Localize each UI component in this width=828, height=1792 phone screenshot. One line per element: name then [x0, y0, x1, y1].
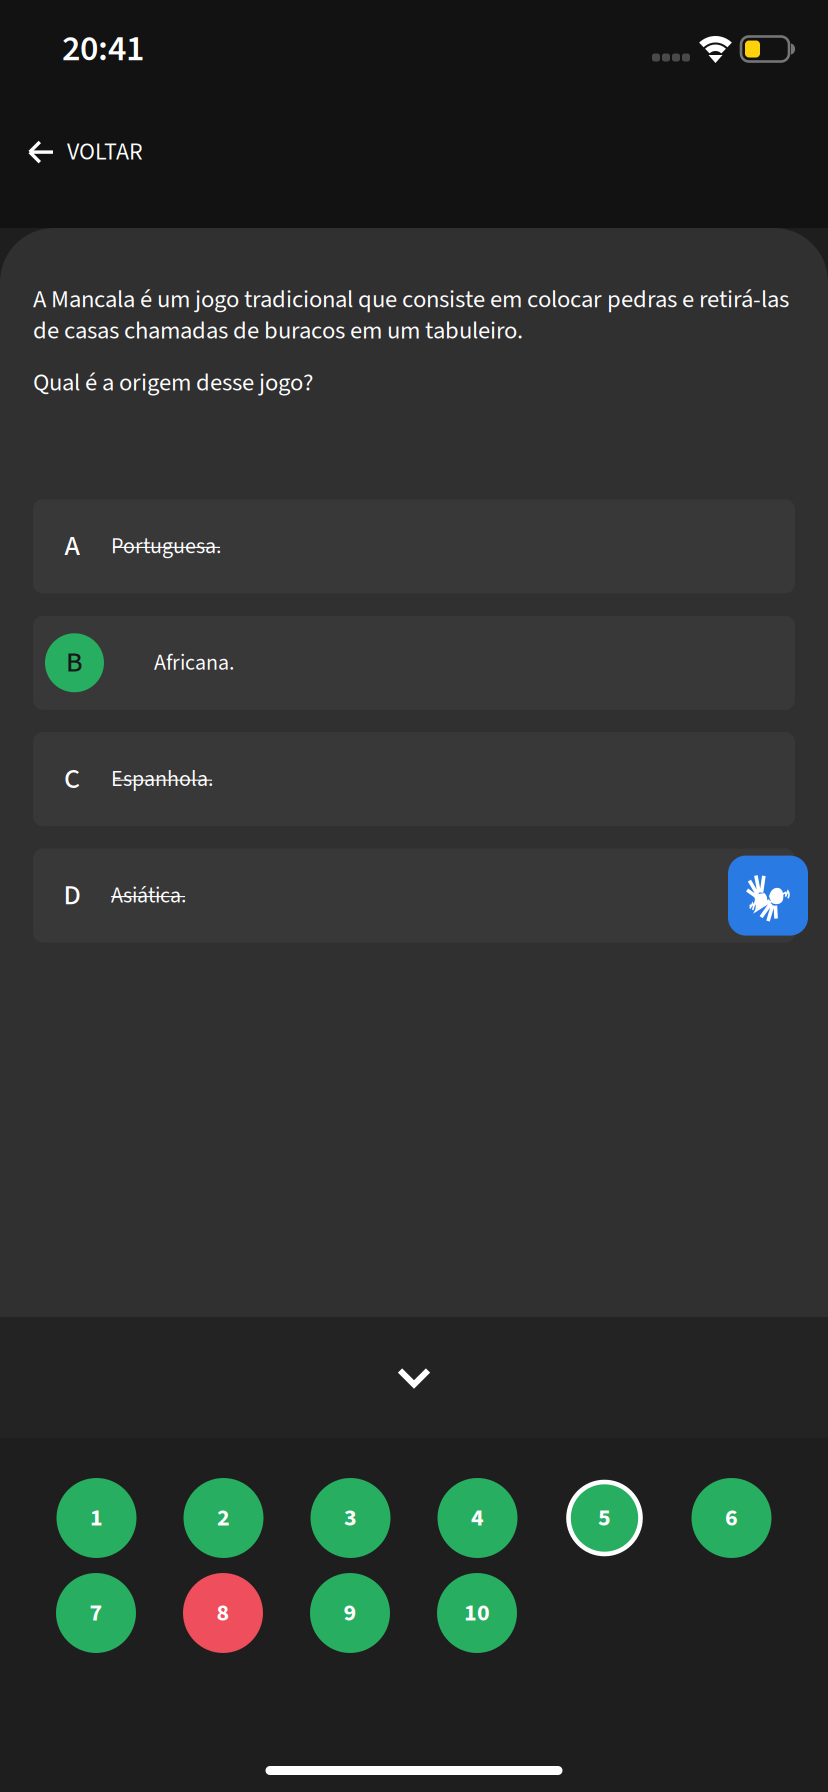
- staticText: C: [64, 759, 80, 799]
- staticText: 2: [217, 1501, 230, 1535]
- button[interactable]: C: [33, 732, 795, 826]
- staticText: 6: [725, 1501, 738, 1535]
- button[interactable]: A: [33, 499, 795, 593]
- button[interactable]: 7: [56, 1573, 136, 1653]
- staticText: Portuguesa.: [111, 531, 221, 562]
- button[interactable]: Mostrar questões: [0, 1317, 828, 1438]
- staticText: D: [63, 876, 80, 915]
- staticText: Qual é a origem desse jogo?: [33, 365, 313, 400]
- staticText: A: [64, 526, 79, 566]
- staticText: B: [66, 643, 83, 683]
- staticText: A Mancala é um jogo tradicional que cons…: [33, 282, 789, 348]
- staticText: 8: [216, 1596, 229, 1630]
- button[interactable]: VLibras, tradutor de Libras: [728, 856, 808, 936]
- staticText: VOLTAR: [67, 135, 143, 169]
- button[interactable]: 9: [310, 1573, 390, 1653]
- staticText: 9: [343, 1596, 356, 1630]
- staticText: 4: [471, 1501, 484, 1535]
- button[interactable]: 2: [183, 1478, 263, 1558]
- button[interactable]: 10: [437, 1573, 517, 1653]
- button[interactable]: 6: [691, 1478, 771, 1558]
- staticText: 3: [344, 1501, 357, 1535]
- button[interactable]: 5: [564, 1478, 644, 1558]
- staticText: Africana.: [154, 647, 234, 678]
- button[interactable]: 3: [310, 1478, 390, 1558]
- button[interactable]: 4: [437, 1478, 517, 1558]
- staticText: 5: [598, 1501, 611, 1535]
- staticText: 10: [464, 1596, 490, 1630]
- staticText: 1: [90, 1501, 103, 1535]
- staticText: 7: [89, 1596, 102, 1630]
- button[interactable]: 1: [56, 1478, 136, 1558]
- staticText: Espanhola.: [111, 763, 213, 795]
- staticText: 20:41: [62, 23, 144, 75]
- staticText: Asiática.: [111, 880, 186, 911]
- button[interactable]: 8: [183, 1573, 263, 1653]
- button[interactable]: D: [33, 849, 795, 943]
- button[interactable]: VOLTAR: [0, 90, 167, 185]
- button[interactable]: B: [33, 616, 795, 710]
